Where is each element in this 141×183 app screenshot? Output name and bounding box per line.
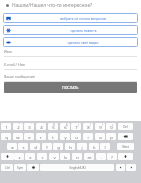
button[interactable]: Delete — [118, 123, 133, 130]
staticText: z — [18, 154, 21, 160]
button[interactable]: g — [53, 143, 63, 150]
staticText: 7 — [75, 124, 78, 130]
button[interactable]: i — [83, 133, 93, 140]
button[interactable]: Shift — [1, 153, 14, 160]
button[interactable]: Move cursor left — [116, 164, 125, 171]
button[interactable]: f — [42, 143, 52, 150]
staticText: k — [93, 144, 96, 150]
staticText: t — [52, 134, 54, 140]
button[interactable]: App logo — [0, 0, 141, 11]
button[interactable]: t — [48, 133, 58, 140]
button[interactable]: j — [77, 143, 87, 150]
button[interactable]: p — [106, 133, 116, 140]
staticText: сделать своё видео — [67, 40, 99, 44]
button[interactable]: z — [14, 153, 24, 160]
button[interactable]: сделать новость — [3, 25, 138, 35]
staticText: " — [19, 123, 21, 127]
button[interactable]: ? — [107, 153, 117, 160]
button[interactable]: e — [24, 133, 34, 140]
staticText: 3 — [28, 124, 31, 130]
button[interactable]: u — [71, 133, 81, 140]
staticText: % — [53, 123, 56, 127]
button[interactable]: Move cursor right — [126, 164, 136, 171]
staticText: n — [76, 154, 79, 160]
button[interactable]: c — [37, 153, 47, 160]
button[interactable]: 9 — [95, 123, 105, 130]
staticText: 2 — [17, 124, 20, 130]
button[interactable]: . — [96, 153, 106, 160]
staticText: . — [100, 154, 102, 160]
button[interactable]: y — [60, 133, 70, 140]
staticText: English(UK) — [69, 166, 86, 170]
staticText: f — [46, 144, 48, 150]
staticText: 1 — [5, 124, 8, 130]
staticText: p — [110, 134, 113, 140]
staticText: & — [66, 123, 68, 127]
button[interactable]: r — [36, 133, 46, 140]
button[interactable]: 3 — [24, 123, 34, 130]
staticText: сделать новость — [70, 28, 97, 32]
button[interactable]: l — [100, 143, 110, 150]
button[interactable]: k — [89, 143, 99, 150]
staticText: выбрать из списка вопросов — [60, 16, 106, 20]
staticText: Нашли/Нашел что-то интересное? — [12, 2, 93, 9]
button[interactable]: w — [13, 133, 23, 140]
staticText: ( — [90, 123, 91, 127]
staticText: m — [87, 154, 92, 160]
button[interactable]: Sym — [14, 164, 26, 171]
staticText: 5 — [52, 124, 55, 130]
button[interactable]: Next field — [117, 143, 134, 150]
button[interactable]: 5 — [48, 123, 58, 130]
staticText: E-mail / Ник — [4, 62, 25, 67]
button[interactable]: 8 — [83, 123, 93, 130]
button[interactable]: English(UK) — [40, 164, 114, 171]
button[interactable]: 2 — [13, 123, 23, 130]
button[interactable]: n — [72, 153, 82, 160]
button[interactable]: 6 — [60, 123, 70, 130]
staticText: r — [40, 134, 42, 140]
staticText: Sym — [17, 166, 23, 170]
button[interactable]: Shift — [118, 153, 133, 160]
button[interactable]: ПОСЛАТЬ — [4, 82, 137, 93]
staticText: 0 — [110, 124, 113, 130]
staticText: g — [57, 144, 60, 150]
staticText: j — [81, 144, 83, 150]
button[interactable]: a — [7, 143, 17, 150]
button[interactable]: b — [60, 153, 70, 160]
staticText: Next — [122, 145, 129, 149]
staticText: c — [41, 154, 44, 160]
staticText: s — [22, 144, 25, 150]
staticText: b — [64, 154, 67, 160]
button[interactable]: x — [25, 153, 35, 160]
button[interactable]: m — [84, 153, 94, 160]
button[interactable]: Ctrl — [1, 164, 13, 171]
staticText: ' — [31, 123, 32, 127]
staticText: Ваше сообщение — [4, 74, 36, 79]
button[interactable]: Emoji — [27, 164, 39, 171]
button[interactable]: h — [65, 143, 75, 150]
staticText: e — [28, 134, 31, 140]
button[interactable]: 0 — [106, 123, 116, 130]
staticText: v — [53, 154, 56, 160]
button[interactable]: v — [49, 153, 59, 160]
staticText: Имя — [4, 49, 12, 54]
button[interactable]: Backspace — [118, 133, 133, 140]
staticText: w — [16, 134, 20, 140]
button[interactable]: 1 — [1, 123, 11, 130]
staticText: 4 — [40, 124, 43, 130]
button[interactable]: d — [30, 143, 40, 150]
other: App logo — [6, 4, 9, 7]
button[interactable]: s — [18, 143, 28, 150]
staticText: d — [34, 144, 37, 150]
button[interactable]: q — [1, 133, 11, 140]
staticText: Del — [123, 125, 128, 129]
button[interactable]: 7 — [71, 123, 81, 130]
button[interactable]: сделать своё видео — [3, 37, 138, 47]
button[interactable]: o — [95, 133, 105, 140]
staticText: 9 — [99, 124, 102, 130]
staticText: ? — [111, 154, 113, 160]
button[interactable]: 4 — [36, 123, 46, 130]
staticText: · — [43, 123, 44, 127]
button[interactable]: выбрать из списка вопросов — [3, 13, 138, 23]
staticText: / — [78, 123, 79, 127]
